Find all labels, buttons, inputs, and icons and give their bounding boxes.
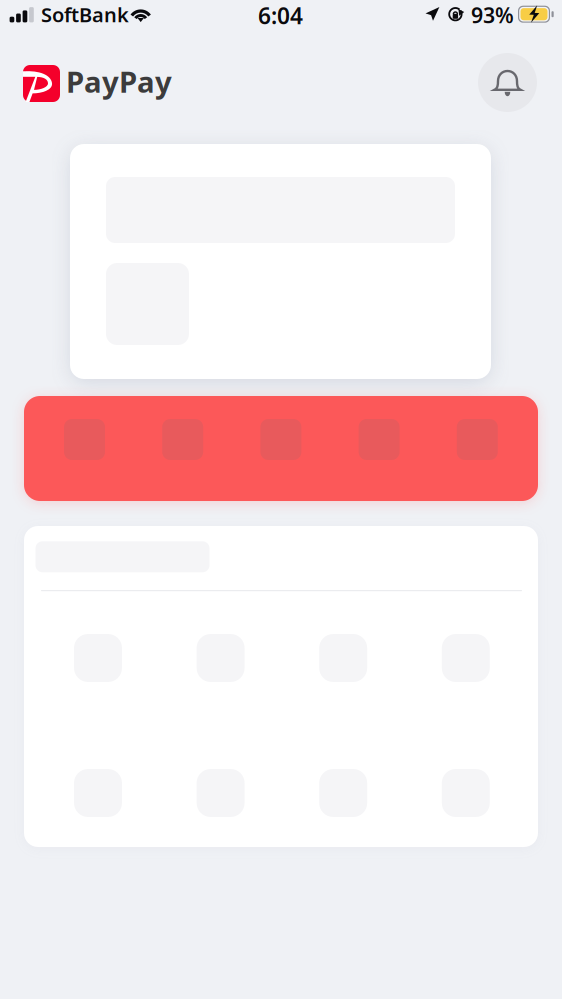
button[interactable]: Shortcut 3 — [260, 419, 301, 460]
button[interactable]: Notifications — [478, 53, 537, 112]
staticText: PayPay — [66, 62, 172, 101]
staticText: 93% — [471, 1, 514, 29]
button[interactable]: Payment code — [70, 144, 491, 379]
button[interactable]: Shortcut 1 — [64, 419, 105, 460]
button[interactable]: Shortcut 4 — [359, 419, 400, 460]
button[interactable]: Shortcut 5 — [457, 419, 498, 460]
button[interactable]: Shortcut 2 — [162, 419, 203, 460]
staticText: SoftBank — [41, 1, 129, 28]
staticText: 6:04 — [258, 0, 303, 30]
